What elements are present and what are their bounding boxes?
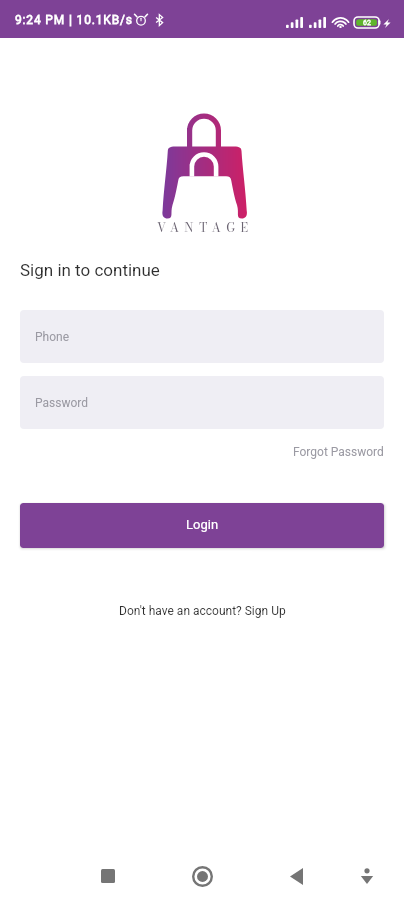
button[interactable]: Home (178, 852, 226, 900)
staticText: Password (35, 396, 89, 410)
button[interactable]: Don't have an account? Sign Up (119, 604, 286, 618)
staticText: VANTAGE (157, 218, 254, 236)
button[interactable]: Phone (20, 310, 384, 363)
staticText: Sign in to continue (20, 260, 160, 280)
button[interactable]: Recents (84, 852, 132, 900)
button[interactable]: Back (272, 852, 320, 900)
button[interactable]: Forgot Password (293, 445, 384, 459)
button[interactable]: Login (20, 503, 384, 548)
staticText: Login (186, 517, 219, 532)
staticText: Phone (35, 330, 70, 344)
button[interactable]: Hide keyboard (343, 852, 391, 900)
button[interactable]: Password (20, 376, 384, 429)
staticText: 62 (363, 19, 371, 27)
staticText: 9:24 PM | 10.1KB/s (15, 13, 133, 27)
